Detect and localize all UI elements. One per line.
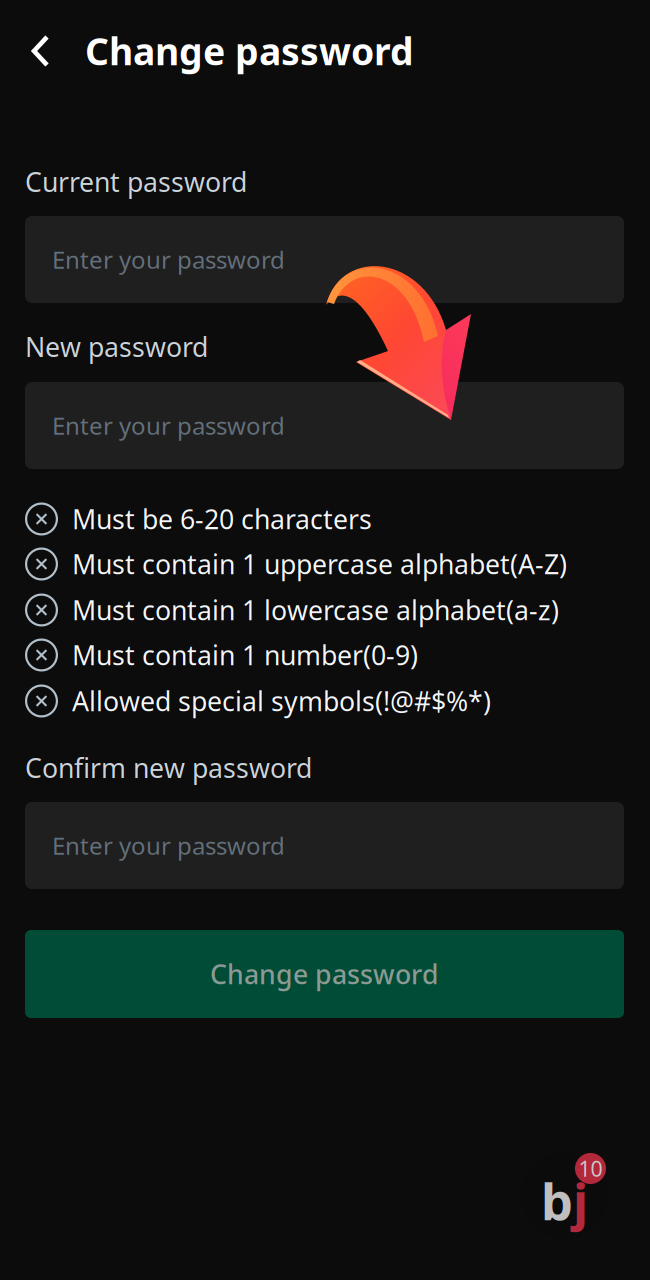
button[interactable]: Back: [22, 26, 64, 76]
staticText: New password: [25, 329, 208, 364]
staticText: Must contain 1 number(0-9): [72, 637, 418, 673]
staticText: Change password: [85, 26, 414, 76]
staticText: Enter your password: [52, 410, 285, 441]
staticText: Enter your password: [52, 244, 285, 275]
staticText: Must contain 1 lowercase alphabet(a-z): [72, 592, 559, 628]
staticText: Must contain 1 uppercase alphabet(A-Z): [72, 546, 567, 582]
staticText: Allowed special symbols(!@#$%*): [72, 683, 491, 719]
staticText: b: [541, 1167, 573, 1234]
button[interactable]: Enter your password: [25, 802, 624, 889]
staticText: Enter your password: [52, 830, 285, 861]
staticText: Current password: [25, 164, 247, 199]
staticText: 10: [578, 1154, 602, 1183]
button[interactable]: Enter your password: [25, 216, 624, 303]
button[interactable]: Change password: [25, 930, 624, 1018]
button[interactable]: Enter your password: [25, 382, 624, 469]
staticText: Must be 6-20 characters: [72, 501, 372, 537]
staticText: Confirm new password: [25, 750, 312, 785]
staticText: j: [573, 1167, 588, 1234]
staticText: Change password: [210, 956, 439, 992]
